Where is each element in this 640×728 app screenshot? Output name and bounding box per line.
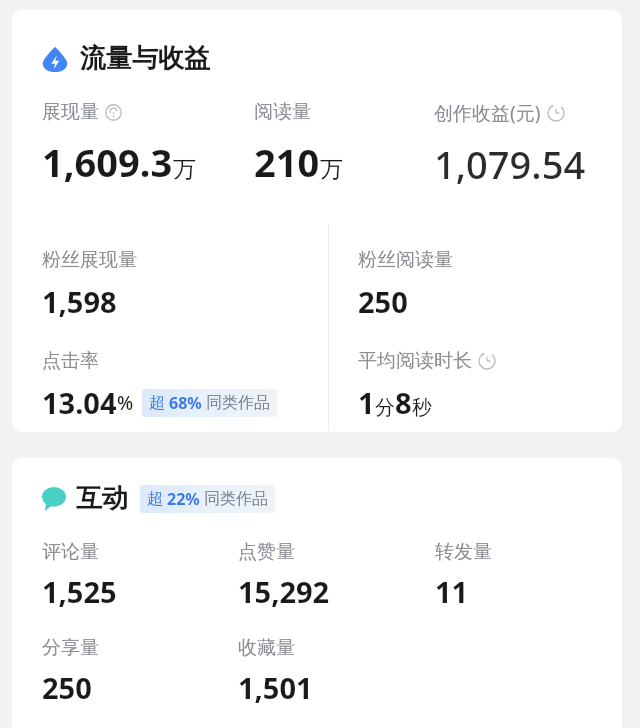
other: 流量与收益 — [42, 46, 68, 72]
other: 互动 — [42, 487, 66, 511]
staticText: 8 — [395, 383, 412, 422]
staticText: 流量与收益 — [80, 42, 210, 75]
staticText: 超 — [147, 489, 163, 509]
staticText: 250 — [42, 668, 92, 707]
staticText: 评论量 — [42, 540, 99, 564]
button[interactable]: 流量与收益 — [42, 42, 210, 75]
button[interactable]: 展现量 — [42, 100, 254, 188]
button[interactable]: 点击率 — [42, 349, 277, 422]
staticText: 同类作品 — [204, 489, 268, 509]
staticText: 22% — [167, 488, 200, 510]
staticText: 展现量 — [42, 100, 99, 124]
button[interactable]: 收藏量 — [238, 636, 435, 707]
staticText: 1,501 — [238, 668, 313, 707]
staticText: 点赞量 — [238, 540, 295, 564]
button[interactable]: 超 — [140, 485, 275, 513]
staticText: 11 — [435, 572, 469, 611]
staticText: 210 — [254, 136, 320, 188]
staticText: 粉丝展现量 — [42, 248, 137, 272]
button[interactable]: 超 — [142, 389, 277, 417]
button[interactable]: 点赞量 — [238, 540, 435, 611]
staticText: 1,598 — [42, 282, 117, 321]
button[interactable]: 转发量 — [435, 540, 595, 611]
staticText: 万 — [320, 155, 343, 184]
button[interactable]: 分享量 — [42, 636, 238, 707]
staticText: 1,079.54 — [434, 138, 586, 190]
staticText: 15,292 — [238, 572, 330, 611]
button[interactable]: 创作收益(元) — [434, 100, 602, 190]
staticText: 阅读量 — [254, 100, 311, 124]
button[interactable]: 粉丝阅读量 — [358, 248, 453, 321]
staticText: % — [117, 390, 134, 416]
staticText: 68% — [169, 392, 202, 414]
staticText: 同类作品 — [206, 393, 270, 413]
staticText: 1 — [358, 383, 375, 422]
staticText: 1,609.3 — [42, 136, 173, 188]
staticText: 收藏量 — [238, 636, 295, 660]
staticText: 超 — [149, 393, 165, 413]
staticText: 250 — [358, 282, 408, 321]
staticText: 平均阅读时长 — [358, 349, 472, 373]
other: 时间说明 — [547, 104, 565, 122]
staticText: 13.04 — [42, 383, 117, 422]
staticText: 创作收益(元) — [434, 100, 541, 126]
staticText: 分 — [375, 395, 395, 420]
staticText: 互动 — [76, 482, 128, 515]
staticText: 1,525 — [42, 572, 117, 611]
button[interactable]: 粉丝展现量 — [42, 248, 137, 321]
staticText: 转发量 — [435, 540, 492, 564]
staticText: 秒 — [412, 395, 432, 420]
staticText: 点击率 — [42, 349, 99, 373]
button[interactable]: 平均阅读时长 — [358, 349, 496, 422]
button[interactable]: 评论量 — [42, 540, 238, 611]
other: 时间说明 — [478, 352, 496, 370]
staticText: 粉丝阅读量 — [358, 248, 453, 272]
staticText: 分享量 — [42, 636, 99, 660]
other: 说明 — [105, 104, 122, 121]
staticText: 万 — [173, 155, 196, 184]
button[interactable]: 互动 — [42, 482, 275, 515]
button[interactable]: 阅读量 — [254, 100, 434, 188]
